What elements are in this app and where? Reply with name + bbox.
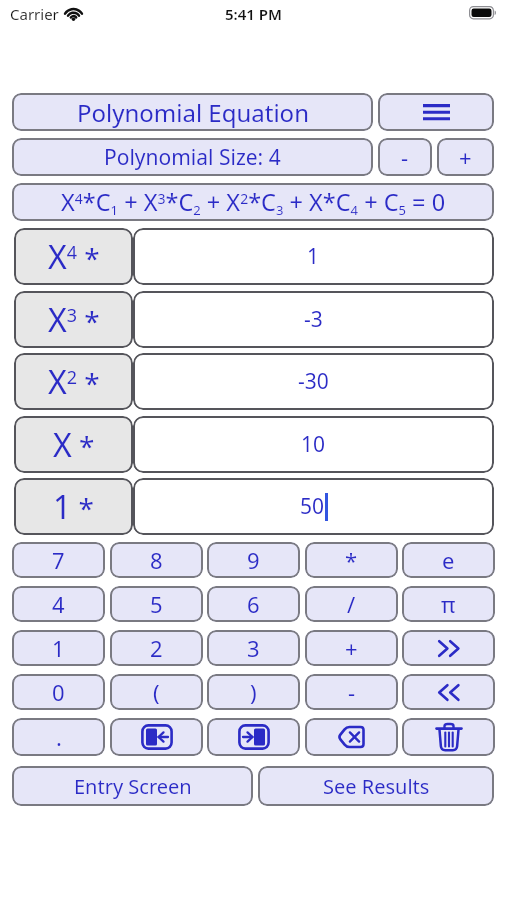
staticText: Carrier (10, 4, 59, 24)
staticText: 4 (52, 589, 65, 619)
button[interactable]: X4 * (14, 228, 133, 285)
button[interactable]: 50 (133, 478, 494, 535)
staticText: + (345, 633, 358, 663)
button[interactable]: - (305, 674, 398, 710)
staticText: X2 * (48, 360, 100, 404)
staticText: 0 (52, 677, 65, 707)
button[interactable]: 0 (12, 674, 105, 710)
button[interactable]: / (305, 586, 398, 622)
button[interactable]: 9 (207, 542, 300, 578)
button[interactable] (207, 718, 300, 756)
button[interactable]: 10 (133, 416, 494, 473)
button[interactable]: 8 (110, 542, 203, 578)
button[interactable]: + (437, 138, 494, 176)
button[interactable]: Polynomial Equation (12, 93, 373, 131)
button[interactable]: e (402, 542, 495, 578)
staticText: Entry Screen (74, 773, 192, 800)
staticText: X3 * (48, 298, 100, 342)
button[interactable]: Polynomial Size: 4 (12, 138, 373, 176)
button[interactable]: 6 (207, 586, 300, 622)
staticText: ) (250, 677, 257, 707)
button[interactable]: ( (110, 674, 203, 710)
staticText: 7 (52, 545, 65, 575)
button[interactable]: X3 * (14, 291, 133, 348)
button[interactable]: * (305, 542, 398, 578)
button[interactable]: -30 (133, 353, 494, 410)
staticText: - (401, 142, 409, 172)
button[interactable] (110, 718, 203, 756)
staticText: - (348, 677, 356, 707)
staticText: * (345, 545, 358, 575)
button[interactable]: X2 * (14, 353, 133, 410)
button[interactable] (402, 630, 495, 666)
button[interactable]: X4*C1 + X3*C2 + X2*C3 + X*C4 + C5 = 0 (12, 183, 494, 221)
staticText: X4*C1 + X3*C2 + X2*C3 + X*C4 + C5 = 0 (61, 186, 446, 218)
staticText: 1 * (53, 485, 95, 529)
button[interactable] (402, 674, 495, 710)
button[interactable]: 3 (207, 630, 300, 666)
staticText: + (459, 142, 472, 172)
button[interactable]: 7 (12, 542, 105, 578)
button[interactable]: . (12, 718, 105, 756)
button[interactable]: 5 (110, 586, 203, 622)
button[interactable]: + (305, 630, 398, 666)
staticText: See Results (323, 773, 430, 800)
staticText: Polynomial Size: 4 (104, 143, 281, 172)
button[interactable] (402, 718, 495, 756)
staticText: 5 (150, 589, 163, 619)
staticText: 2 (150, 633, 163, 663)
button[interactable] (305, 718, 398, 756)
button[interactable]: Entry Screen (12, 766, 253, 806)
staticText: X * (53, 423, 95, 467)
staticText: 8 (150, 545, 163, 575)
staticText: -30 (298, 367, 329, 396)
staticText: 3 (247, 633, 260, 663)
staticText: . (56, 722, 62, 752)
staticText: 10 (301, 430, 326, 459)
staticText: 50 (300, 492, 325, 521)
staticText: 5:41 PM (225, 4, 282, 24)
staticText: / (347, 589, 356, 619)
button[interactable]: 1 * (14, 478, 133, 535)
staticText: Polynomial Equation (77, 96, 309, 129)
button[interactable]: -3 (133, 291, 494, 348)
button[interactable]: X * (14, 416, 133, 473)
staticText: 1 (52, 633, 65, 663)
button[interactable]: 1 (133, 228, 494, 285)
button[interactable]: 4 (12, 586, 105, 622)
staticText: 9 (247, 545, 260, 575)
staticText: 6 (247, 589, 260, 619)
button[interactable]: ) (207, 674, 300, 710)
staticText: 1 (307, 242, 320, 271)
staticText: ( (153, 677, 160, 707)
staticText: -3 (304, 305, 323, 334)
staticText: X4 * (48, 235, 100, 279)
button[interactable]: - (378, 138, 432, 176)
button[interactable]: 2 (110, 630, 203, 666)
button[interactable]: See Results (258, 766, 494, 806)
staticText: e (442, 545, 455, 575)
button[interactable]: 1 (12, 630, 105, 666)
button[interactable]: π (402, 586, 495, 622)
staticText: π (441, 589, 456, 619)
button[interactable] (378, 93, 494, 131)
